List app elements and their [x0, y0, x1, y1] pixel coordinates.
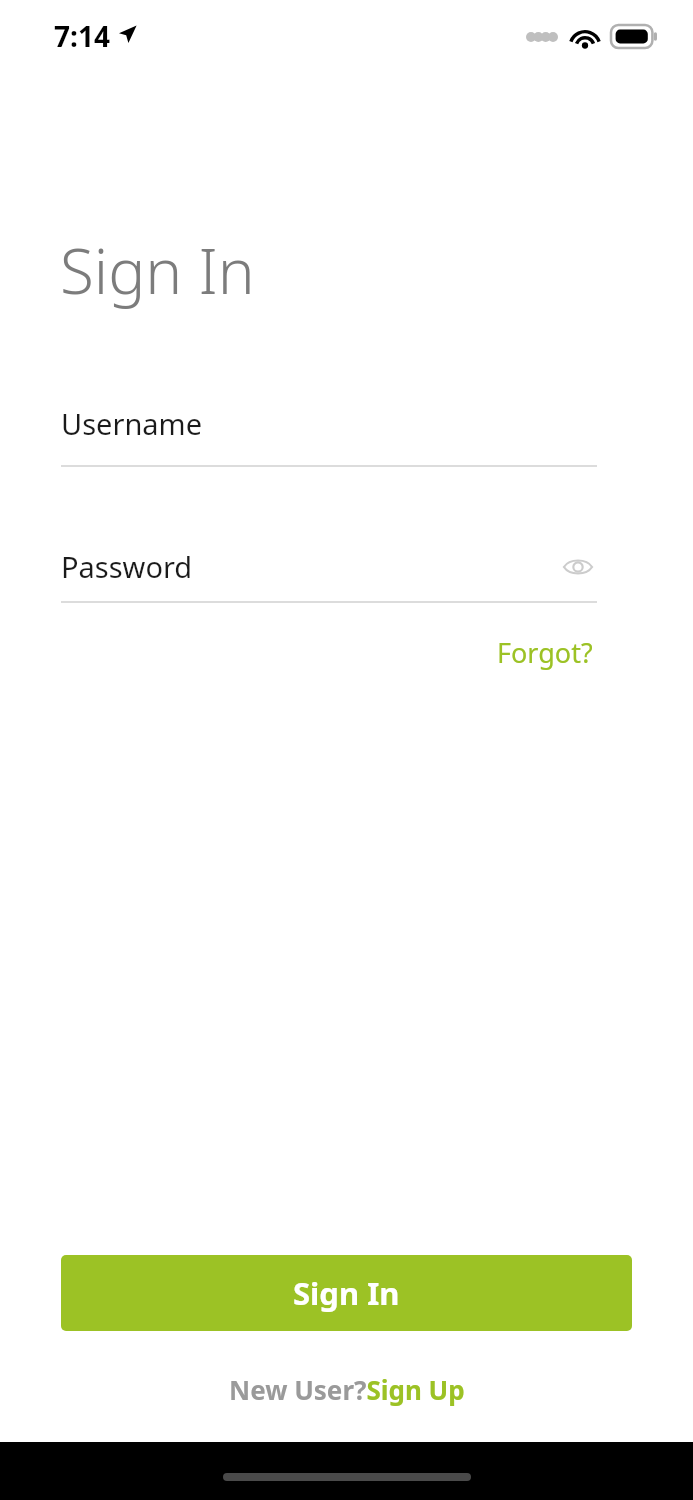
staticText: Username	[61, 404, 203, 443]
staticText: Forgot?	[497, 634, 593, 671]
staticText: New User?Sign Up	[229, 1372, 465, 1407]
staticText: Sign In	[293, 1272, 400, 1314]
button[interactable]: Password	[61, 547, 597, 603]
button[interactable]: Username	[61, 404, 597, 467]
button[interactable]: Show password	[559, 548, 597, 586]
staticText: Sign In	[60, 228, 255, 312]
button[interactable]: Sign In	[61, 1255, 632, 1331]
button[interactable]: New User?Sign Up	[223, 1368, 471, 1411]
staticText: 7:14	[54, 17, 110, 55]
staticText: Password	[61, 547, 193, 586]
button[interactable]: Forgot?	[493, 628, 597, 677]
